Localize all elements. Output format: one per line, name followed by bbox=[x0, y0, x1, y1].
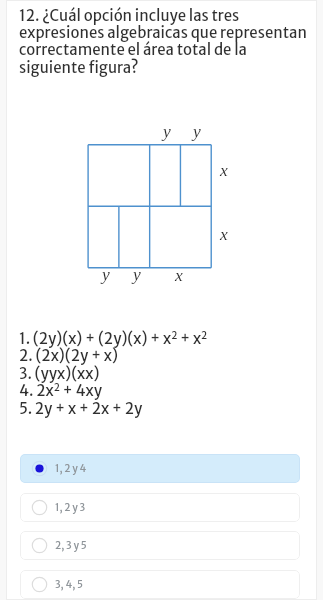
staticText: 1, 2 y 4 bbox=[55, 462, 87, 475]
staticText: x bbox=[220, 160, 228, 179]
staticText: correctamente el área total de la bbox=[19, 40, 247, 59]
staticText: y bbox=[102, 264, 110, 283]
staticText: 2, 3 y 5 bbox=[55, 539, 87, 552]
button[interactable]: 3, 4, 5 bbox=[20, 570, 300, 599]
staticText: 12. ¿Cuál opción incluye las tres bbox=[19, 6, 240, 25]
staticText: 1. (2y)(x) + (2y)(x) + x2 + x2 bbox=[19, 329, 208, 348]
staticText: siguiente figura? bbox=[19, 58, 139, 77]
button[interactable]: 2, 3 y 5 bbox=[20, 531, 300, 560]
button[interactable]: 1, 2 y 3 bbox=[20, 493, 300, 522]
staticText: x bbox=[175, 265, 183, 284]
staticText: x bbox=[220, 224, 228, 243]
staticText: y bbox=[133, 264, 141, 283]
staticText: 3, 4, 5 bbox=[55, 578, 83, 591]
staticText: 1, 2 y 3 bbox=[55, 501, 86, 514]
button[interactable]: 1, 2 y 4 bbox=[20, 454, 300, 483]
staticText: 5. 2y + x + 2x + 2y bbox=[19, 399, 143, 418]
staticText: 2. (2x)(2y + x) bbox=[19, 346, 118, 365]
staticText: expresiones algebraicas que representan bbox=[19, 23, 307, 42]
staticText: y bbox=[163, 121, 171, 140]
staticText: 4. 2x2 + 4xy bbox=[19, 381, 103, 400]
staticText: y bbox=[193, 121, 201, 140]
staticText: 3. (yyx)(xx) bbox=[19, 364, 100, 383]
